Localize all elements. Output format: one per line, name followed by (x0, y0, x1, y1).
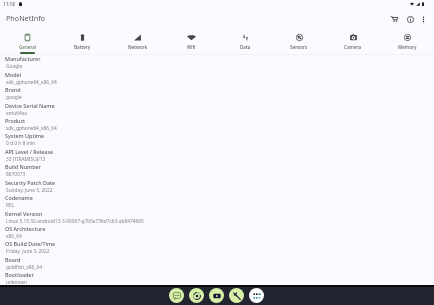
button[interactable]: Device Serial Name (0, 101, 434, 116)
staticText: General (19, 44, 37, 50)
button[interactable]: Settings (229, 288, 244, 303)
staticText: OS Architecture (5, 225, 46, 232)
staticText: goldfish_x86_64 (6, 264, 42, 270)
button[interactable]: YouTube (209, 288, 224, 303)
staticText: Camera (344, 44, 362, 50)
staticText: API Level / Release (5, 148, 54, 155)
button[interactable]: Model (0, 70, 434, 85)
button[interactable]: API Level / Release (0, 147, 434, 162)
button[interactable]: Build Number (0, 162, 434, 177)
button[interactable]: Brand (0, 85, 434, 100)
staticText: Friday, June 3, 2022 (6, 248, 50, 254)
staticText: emu64xa (6, 110, 27, 116)
staticText: Kernel Version (5, 210, 43, 217)
button[interactable]: Cart (386, 11, 402, 27)
button[interactable]: Camera (326, 29, 380, 55)
button[interactable]: More options (415, 11, 431, 27)
button[interactable]: Sensors (272, 29, 326, 55)
button[interactable]: Chrome (189, 288, 204, 303)
staticText: Sunday, June 5, 2022 (6, 187, 53, 193)
staticText: sdk_gphone64_x86_64 (6, 125, 57, 131)
staticText: OS Build Date/Time (5, 240, 56, 247)
staticText: Bootloader (5, 271, 34, 278)
button[interactable]: Bootloader (0, 270, 434, 285)
staticText: sdk_gphone64_x86_64 (6, 79, 57, 85)
staticText: PhoNetInfo (6, 13, 45, 23)
button[interactable]: System Uptime (0, 131, 434, 146)
button[interactable]: Manufacturer (0, 54, 434, 69)
button[interactable]: Messages (169, 288, 184, 303)
button[interactable]: Memory (380, 29, 434, 55)
button[interactable]: Kernel Version (0, 209, 434, 224)
button[interactable]: Product (0, 116, 434, 131)
staticText: Battery (74, 44, 91, 50)
button[interactable]: OS Build Date/Time (0, 239, 434, 254)
staticText: Codename (5, 194, 33, 201)
staticText: 33 (TIRAMISU)/13 (6, 156, 46, 162)
staticText: Manufacturer (5, 55, 41, 62)
button[interactable]: Battery (55, 29, 110, 55)
button[interactable]: Board (0, 255, 434, 270)
button[interactable]: Security Patch Date (0, 178, 434, 193)
staticText: Device Serial Name (5, 102, 55, 109)
staticText: Sensors (290, 44, 308, 50)
staticText: Model (5, 71, 22, 78)
button[interactable]: Data (218, 29, 272, 55)
staticText: System Uptime (5, 132, 45, 139)
staticText: Build Number (5, 163, 41, 170)
button[interactable]: All apps (249, 288, 264, 303)
staticText: 11:18 (3, 1, 15, 7)
staticText: Security Patch Date (5, 179, 56, 186)
staticText: Data (240, 44, 251, 50)
button[interactable]: OS Architecture (0, 224, 434, 239)
staticText: 8670573 (6, 171, 26, 177)
staticText: 0 d 0 h 8 min (6, 140, 36, 146)
staticText: Memory (398, 44, 417, 50)
staticText: Linux 5.15.32-android13-3-00067-g7b5e736… (6, 218, 144, 224)
staticText: google (6, 94, 22, 100)
staticText: Product (5, 117, 26, 124)
button[interactable]: General (0, 29, 55, 55)
staticText: x86_64 (6, 233, 22, 239)
staticText: Board (5, 256, 21, 263)
button[interactable]: Network (110, 29, 164, 55)
staticText: Google (6, 63, 23, 69)
staticText: REL (6, 202, 15, 208)
button[interactable]: Wifi (164, 29, 218, 55)
button[interactable]: Codename (0, 193, 434, 208)
button[interactable]: Info (402, 11, 418, 27)
staticText: unknown (6, 279, 27, 285)
staticText: Network (128, 44, 147, 50)
staticText: Wifi (187, 44, 196, 50)
staticText: Brand (5, 86, 21, 93)
